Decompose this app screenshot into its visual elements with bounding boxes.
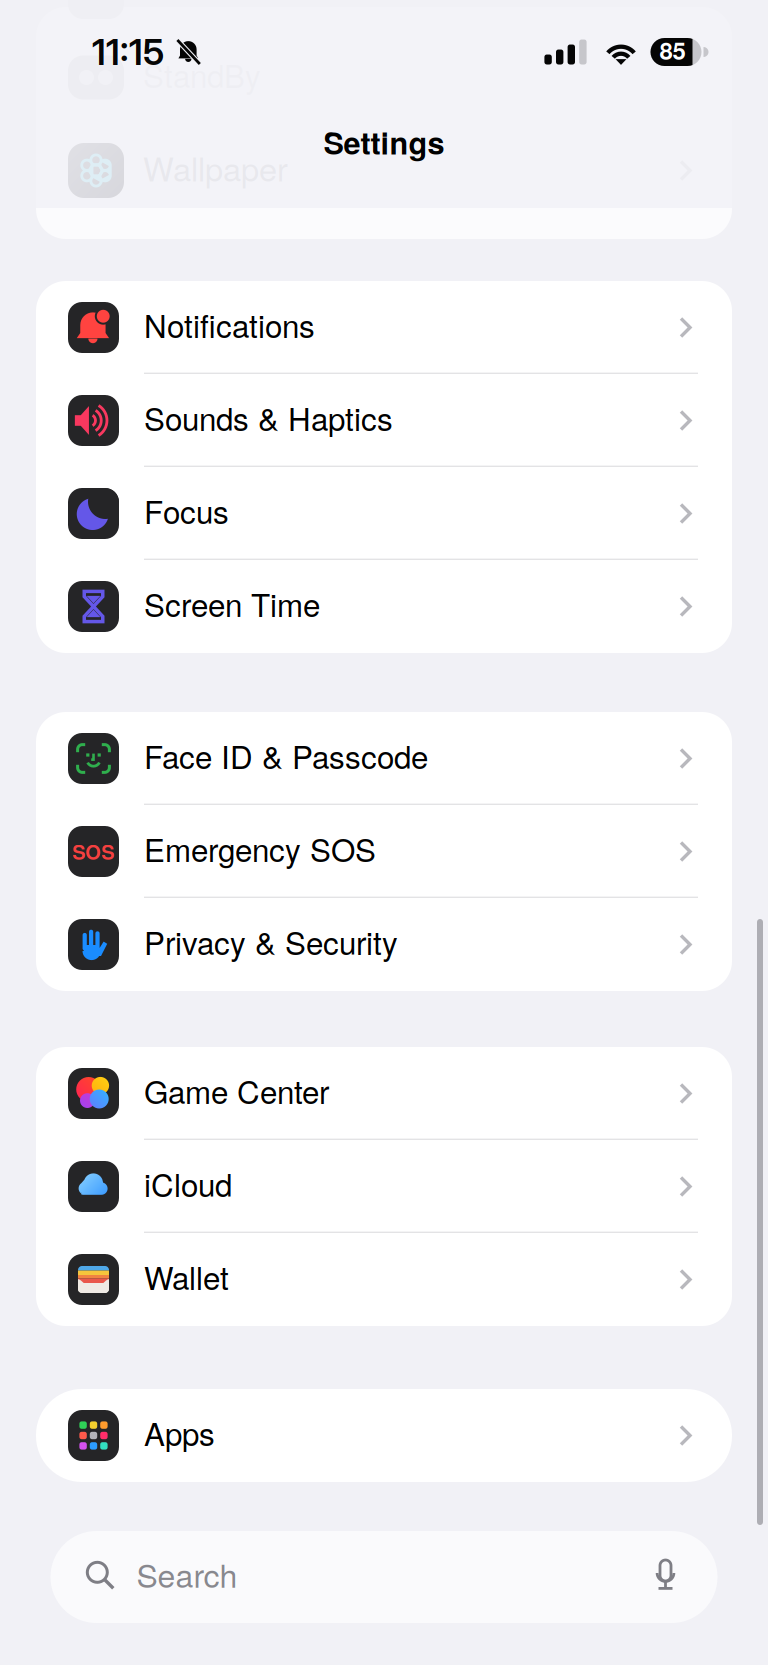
staticText: Search [136,1551,237,1597]
button[interactable]: Search [50,1531,717,1623]
button[interactable]: Apps [36,1389,732,1482]
staticText: iCloud [144,1161,232,1206]
staticText: SOS [72,837,114,866]
staticText: Focus [144,488,229,533]
staticText: Sounds & Haptics [144,395,393,440]
staticText: Game Center [144,1068,329,1113]
staticText: Screen Time [144,581,320,626]
staticText: Settings [323,120,444,164]
staticText: Wallet [144,1254,229,1299]
staticText: 85 [659,33,685,67]
staticText: StandBy [143,52,261,97]
staticText: Notifications [144,302,315,347]
button[interactable]: Screen Time [36,560,732,653]
staticText: Face ID & Passcode [144,733,428,778]
button[interactable]: Wallet [36,1233,732,1326]
staticText: Wallpaper [143,144,288,191]
button[interactable]: iCloud [36,1140,732,1233]
button[interactable]: Game Center [36,1047,732,1140]
button[interactable]: Privacy & Security [36,898,732,991]
button[interactable]: Face ID & Passcode [36,712,732,805]
staticText: 11:15 [92,30,164,74]
button[interactable]: SOS [36,805,732,898]
button[interactable]: Notifications [36,281,732,374]
staticText: Privacy & Security [144,919,398,964]
staticText: Emergency SOS [144,826,376,871]
button[interactable]: Focus [36,467,732,560]
staticText: Apps [144,1410,215,1455]
button[interactable]: Sounds & Haptics [36,374,732,467]
